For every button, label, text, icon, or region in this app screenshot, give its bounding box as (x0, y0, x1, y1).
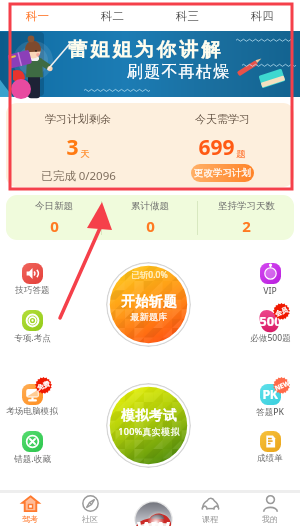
button[interactable]: 社区 (60, 493, 120, 526)
staticText: 刷题不再枯燥 (127, 62, 231, 82)
staticText: 蕾姐姐为你讲解 (68, 38, 224, 62)
staticText: 技巧答题 (15, 285, 50, 296)
staticText: 考场电脑模拟 (6, 406, 58, 417)
button[interactable]: 技巧答题 (1, 258, 63, 299)
button[interactable]: 驾考 (0, 493, 60, 526)
staticText: 免费 (36, 380, 51, 392)
staticText: 最新题库 (130, 311, 168, 322)
staticText: 100%真实模拟 (118, 425, 180, 437)
staticText: 成绩单 (257, 453, 283, 464)
button[interactable]: 更改学习计划 (191, 164, 254, 182)
staticText: 科四 (251, 9, 274, 23)
button[interactable]: 成绩单 (239, 426, 300, 467)
staticText: 今日新题 (35, 200, 73, 212)
button[interactable]: 科二 (75, 0, 150, 31)
staticText: 课程 (202, 514, 218, 524)
button[interactable]: 坚持学习天数 (198, 195, 294, 240)
button[interactable]: VIP (239, 258, 300, 300)
staticText: 错题.收藏 (14, 453, 51, 465)
staticText: 已斩0.0% (131, 269, 168, 281)
button[interactable]: 错题.收藏 (1, 426, 63, 468)
button[interactable] (106, 262, 191, 347)
button[interactable]: 500 (239, 305, 300, 347)
staticText: 答题PK (256, 406, 284, 418)
staticText: PK (262, 386, 278, 403)
staticText: 科三 (176, 9, 199, 23)
button[interactable]: Camera (120, 493, 180, 526)
button[interactable]: 课程 (180, 493, 240, 526)
staticText: 天 (80, 148, 90, 160)
staticText: 累计做题 (131, 200, 169, 212)
button[interactable]: 科四 (225, 0, 300, 31)
staticText: 驾考 (22, 514, 38, 524)
staticText: 2 (242, 216, 251, 236)
button[interactable]: PK (239, 379, 300, 421)
button[interactable] (106, 383, 191, 468)
staticText: 会员 (274, 306, 289, 318)
staticText: 模拟考试 (121, 407, 177, 424)
button[interactable]: 免费 (1, 379, 63, 420)
button[interactable]: 今日新题 (6, 195, 102, 240)
staticText: 题 (236, 148, 246, 160)
staticText: 更改学习计划 (194, 167, 251, 179)
staticText: 0 (146, 216, 155, 236)
staticText: 已完成 0/2096 (41, 168, 116, 184)
staticText: WWW (132, 516, 171, 526)
staticText: 500 (259, 312, 282, 330)
button[interactable]: 学习计划剩余 (6, 103, 150, 187)
staticText: VIP (263, 285, 277, 297)
button[interactable]: 我的 (240, 493, 300, 526)
staticText: 699 (198, 133, 235, 162)
button[interactable]: 专项.考点 (1, 305, 63, 347)
staticText: NEW (273, 378, 291, 393)
staticText: 科一 (26, 9, 49, 23)
staticText: 社区 (82, 514, 98, 524)
button[interactable]: 科一 (0, 0, 75, 31)
staticText: 学习计划剩余 (45, 112, 111, 126)
staticText: 专项.考点 (14, 332, 51, 344)
staticText: 开始斩题 (121, 293, 177, 310)
staticText: 科二 (101, 9, 124, 23)
staticText: 我的 (262, 514, 278, 524)
button[interactable]: 科三 (150, 0, 225, 31)
button[interactable]: 今天需学习 (150, 103, 294, 187)
staticText: 必做500题 (250, 332, 291, 344)
staticText: 今天需学习 (195, 112, 250, 126)
staticText: 0 (50, 216, 59, 236)
staticText: 3 (66, 133, 79, 162)
button[interactable]: 累计做题 (102, 195, 198, 240)
staticText: 坚持学习天数 (218, 200, 275, 212)
